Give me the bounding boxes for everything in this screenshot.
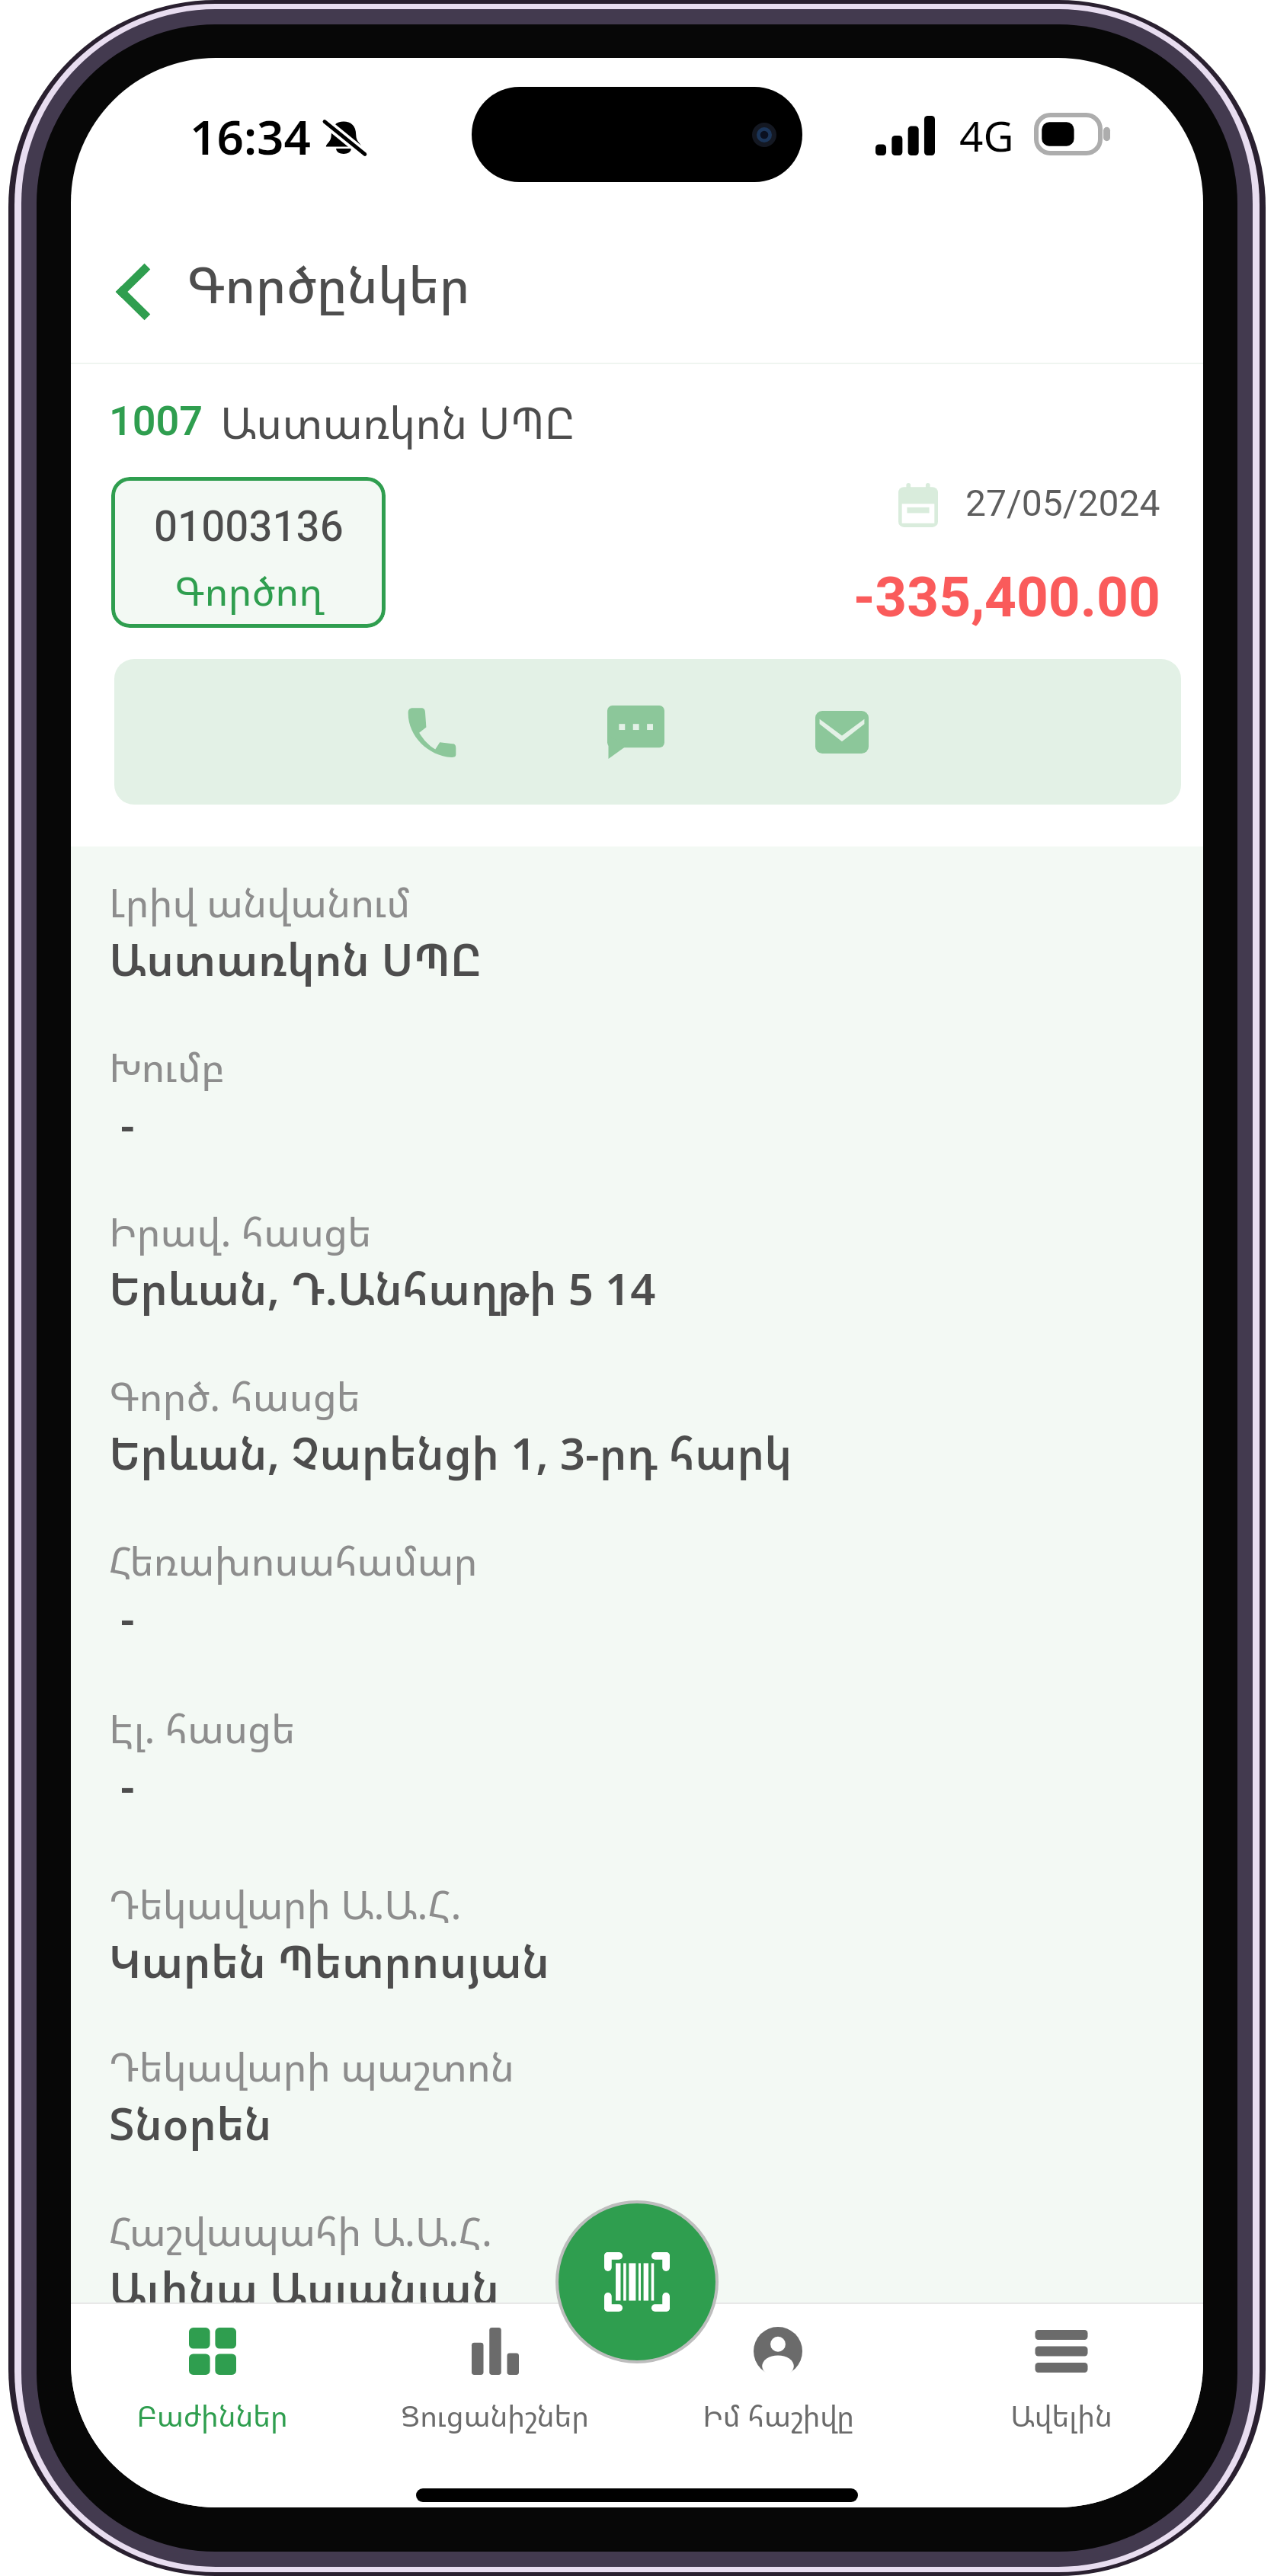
button[interactable]: Իմ հաշիվը xyxy=(636,2306,920,2458)
staticText: 27/05/2024 xyxy=(965,478,1160,532)
button[interactable]: Ցուցանիշներ xyxy=(354,2306,636,2458)
staticText: Կարեն Պետրոսյան xyxy=(109,1931,550,1991)
button[interactable]: Back xyxy=(91,251,174,333)
staticText: -335,400.00 xyxy=(853,558,1160,640)
staticText: Տնօրեն xyxy=(109,2093,272,2153)
staticText: Երևան, Դ.Անհաղթի 5 14 xyxy=(109,1258,656,1318)
staticText: 16:34 xyxy=(190,104,311,168)
staticText: Գործ. հասցե xyxy=(109,1368,360,1422)
staticText: - xyxy=(109,1093,135,1154)
staticText: Լրիվ անվանում xyxy=(109,875,411,929)
staticText: Էլ. հասցե xyxy=(109,1701,296,1755)
staticText: Երևան, Չարենցի 1, 3-րդ հարկ xyxy=(109,1422,792,1483)
button[interactable]: Scan barcode xyxy=(559,2203,715,2360)
staticText: Դեկավարի Ա.Ա.Հ. xyxy=(109,1877,462,1931)
button[interactable]: Ավելին xyxy=(920,2306,1203,2458)
button[interactable]: Բաժիններ xyxy=(71,2306,354,2458)
staticText: - xyxy=(109,1587,135,1647)
staticText: Դեկավարի պաշտոն xyxy=(109,2039,515,2093)
button[interactable]: Call xyxy=(393,659,469,805)
staticText: Աստառկոն ՍՊԸ xyxy=(109,929,482,989)
staticText: Գործընկեր xyxy=(187,250,470,318)
staticText: Հեռախոսահամար xyxy=(109,1533,478,1587)
staticText: 1007 xyxy=(109,392,203,452)
staticText: Ավելին xyxy=(1010,2395,1112,2435)
button[interactable]: Message xyxy=(597,659,674,805)
staticText: Հաշվապահի Ա.Ա.Հ. xyxy=(109,2203,492,2258)
staticText: Իմ հաշիվը xyxy=(703,2395,854,2435)
staticText: Գործող xyxy=(174,563,323,617)
staticText: - xyxy=(109,1755,135,1815)
staticText: Ցուցանիշներ xyxy=(401,2395,589,2435)
staticText: Ալինա Ասլանյան xyxy=(109,2258,500,2318)
staticText: 01003136 xyxy=(154,497,344,558)
staticText: Աստառկոն ՍՊԸ xyxy=(220,392,575,452)
staticText: 4G xyxy=(959,107,1014,164)
staticText: Խումբ xyxy=(109,1039,225,1093)
staticText: Իրավ. հասցե xyxy=(109,1204,372,1258)
button[interactable]: Email xyxy=(804,659,880,805)
staticText: Բաժիններ xyxy=(136,2395,288,2435)
button[interactable]: 01003136 xyxy=(111,477,386,628)
